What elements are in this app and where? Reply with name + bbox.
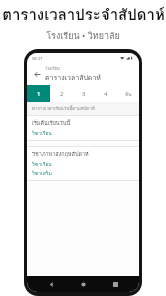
button[interactable]: Home bbox=[75, 276, 91, 292]
button[interactable]: 1 bbox=[27, 85, 50, 102]
staticText: วิชาเสริม bbox=[32, 169, 52, 177]
staticText: ตารางเวลาเรียนวันนี้ตามสัปดาห์ bbox=[32, 105, 95, 112]
button[interactable]: 4 bbox=[95, 85, 117, 102]
staticText: 2 bbox=[60, 90, 64, 98]
staticText: จัน bbox=[125, 90, 132, 98]
staticText: 1 bbox=[37, 90, 41, 98]
staticText: ตารางเวลาสัปดาห์ bbox=[45, 72, 101, 83]
staticText: โรงเรียน • วิทยาลัย bbox=[46, 29, 120, 43]
button[interactable]: Back bbox=[31, 68, 43, 80]
button[interactable]: เริ่มต้นเรียนวันนี้ bbox=[27, 116, 139, 140]
staticText: วิชาเรียน bbox=[32, 160, 52, 168]
button[interactable]: 3 bbox=[73, 85, 95, 102]
staticText: วิชาเรียน bbox=[32, 129, 52, 137]
button[interactable]: Recent apps bbox=[107, 276, 123, 292]
staticText: 4 bbox=[104, 90, 108, 98]
button[interactable]: วิชาภาษาอังกฤษสัปดาห์ bbox=[27, 147, 139, 180]
staticText: โรงเรียน bbox=[45, 65, 60, 71]
staticText: 3 bbox=[82, 90, 86, 98]
button[interactable]: จัน bbox=[117, 85, 139, 102]
staticText: เริ่มต้นเรียนวันนี้ bbox=[32, 119, 71, 128]
staticText: 08:37 bbox=[32, 56, 43, 61]
staticText: วิชาภาษาอังกฤษสัปดาห์ bbox=[32, 150, 89, 159]
button[interactable]: 2 bbox=[50, 85, 73, 102]
staticText: ตารางเวลาประจำสัปดาห์ bbox=[2, 3, 165, 27]
button[interactable]: Back bbox=[43, 276, 59, 292]
